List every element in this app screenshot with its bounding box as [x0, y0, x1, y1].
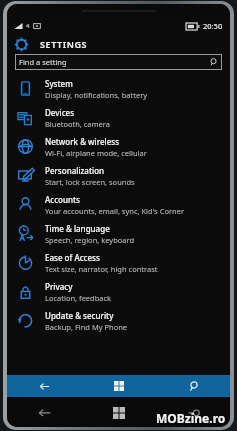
button[interactable]: Find a setting — [15, 54, 222, 70]
button[interactable]: Network & wireless — [7, 132, 230, 161]
staticText: Text size, narrator, high contrast — [45, 264, 158, 274]
staticText: Find a setting — [19, 57, 67, 67]
staticText: Speech, region, keyboard — [45, 235, 135, 245]
button[interactable]: System — [7, 74, 230, 103]
staticText: Devices — [45, 107, 75, 118]
staticText: Location, feedback — [45, 293, 112, 303]
staticText: 4 — [26, 22, 30, 30]
button[interactable]: Privacy — [7, 277, 230, 306]
staticText: SETTINGS — [40, 38, 88, 50]
button[interactable]: Start — [82, 375, 156, 397]
button[interactable]: Back key — [7, 399, 82, 427]
staticText: Accounts — [45, 194, 80, 205]
staticText: Your accounts, email, sync, Kid's Corner — [45, 206, 184, 216]
button[interactable]: Back — [7, 375, 82, 397]
button[interactable]: Search — [156, 375, 230, 397]
staticText: Network & wireless — [45, 136, 120, 147]
button[interactable]: Update & security — [7, 306, 230, 335]
staticText: Bluetooth, camera — [45, 119, 110, 129]
staticText: Privacy — [45, 281, 73, 292]
staticText: MOBzine.ro — [156, 410, 226, 426]
staticText: Backup, Find My Phone — [45, 322, 128, 332]
button[interactable]: Search key — [156, 399, 230, 427]
staticText: Display, notifications, battery — [45, 90, 148, 100]
staticText: System — [45, 78, 73, 89]
button[interactable]: Personalization — [7, 161, 230, 190]
staticText: Time & language — [45, 223, 110, 234]
staticText: 20:50 — [203, 21, 223, 31]
button[interactable]: Devices — [7, 103, 230, 132]
button[interactable]: Accounts — [7, 190, 230, 219]
staticText: Wi-Fi, airplane mode, cellular — [45, 148, 147, 158]
staticText: Start, lock screen, sounds — [45, 177, 135, 187]
button[interactable]: Time & language — [7, 219, 230, 248]
button[interactable]: Start key — [82, 399, 156, 427]
staticText: Personalization — [45, 165, 105, 176]
button[interactable]: Ease of Access — [7, 248, 230, 277]
staticText: Update & security — [45, 310, 114, 321]
staticText: Ease of Access — [45, 252, 100, 263]
